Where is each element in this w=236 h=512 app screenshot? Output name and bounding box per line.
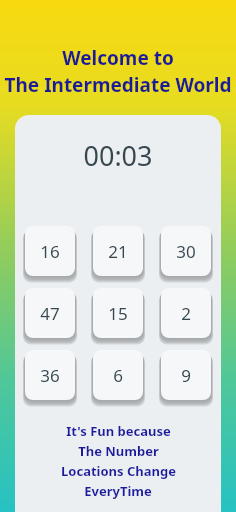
button[interactable]: 00:03 (15, 137, 221, 174)
button[interactable]: 30 (161, 226, 211, 276)
button[interactable]: 9 (161, 350, 211, 400)
staticText: The Number (78, 442, 159, 460)
button[interactable]: 47 (25, 288, 75, 338)
button[interactable]: 21 (93, 226, 143, 276)
button[interactable]: 6 (93, 350, 143, 400)
staticText: 30 (176, 240, 196, 263)
staticText: 16 (40, 240, 60, 263)
button[interactable]: 16 (25, 226, 75, 276)
button[interactable]: 2 (161, 288, 211, 338)
staticText: Welcome to (0, 45, 236, 71)
staticText: 6 (113, 364, 123, 387)
staticText: 36 (40, 364, 60, 387)
button[interactable]: 36 (25, 350, 75, 400)
staticText: The Intermediate World (0, 72, 236, 98)
staticText: 47 (40, 302, 60, 325)
staticText: EveryTime (84, 482, 152, 500)
staticText: 9 (181, 364, 191, 387)
button[interactable]: 15 (93, 288, 143, 338)
staticText: Locations Change (61, 462, 176, 480)
staticText: 21 (108, 240, 128, 263)
staticText: It's Fun because (66, 422, 171, 440)
staticText: 00:03 (83, 137, 153, 174)
staticText: 2 (181, 302, 191, 325)
staticText: 15 (108, 302, 128, 325)
